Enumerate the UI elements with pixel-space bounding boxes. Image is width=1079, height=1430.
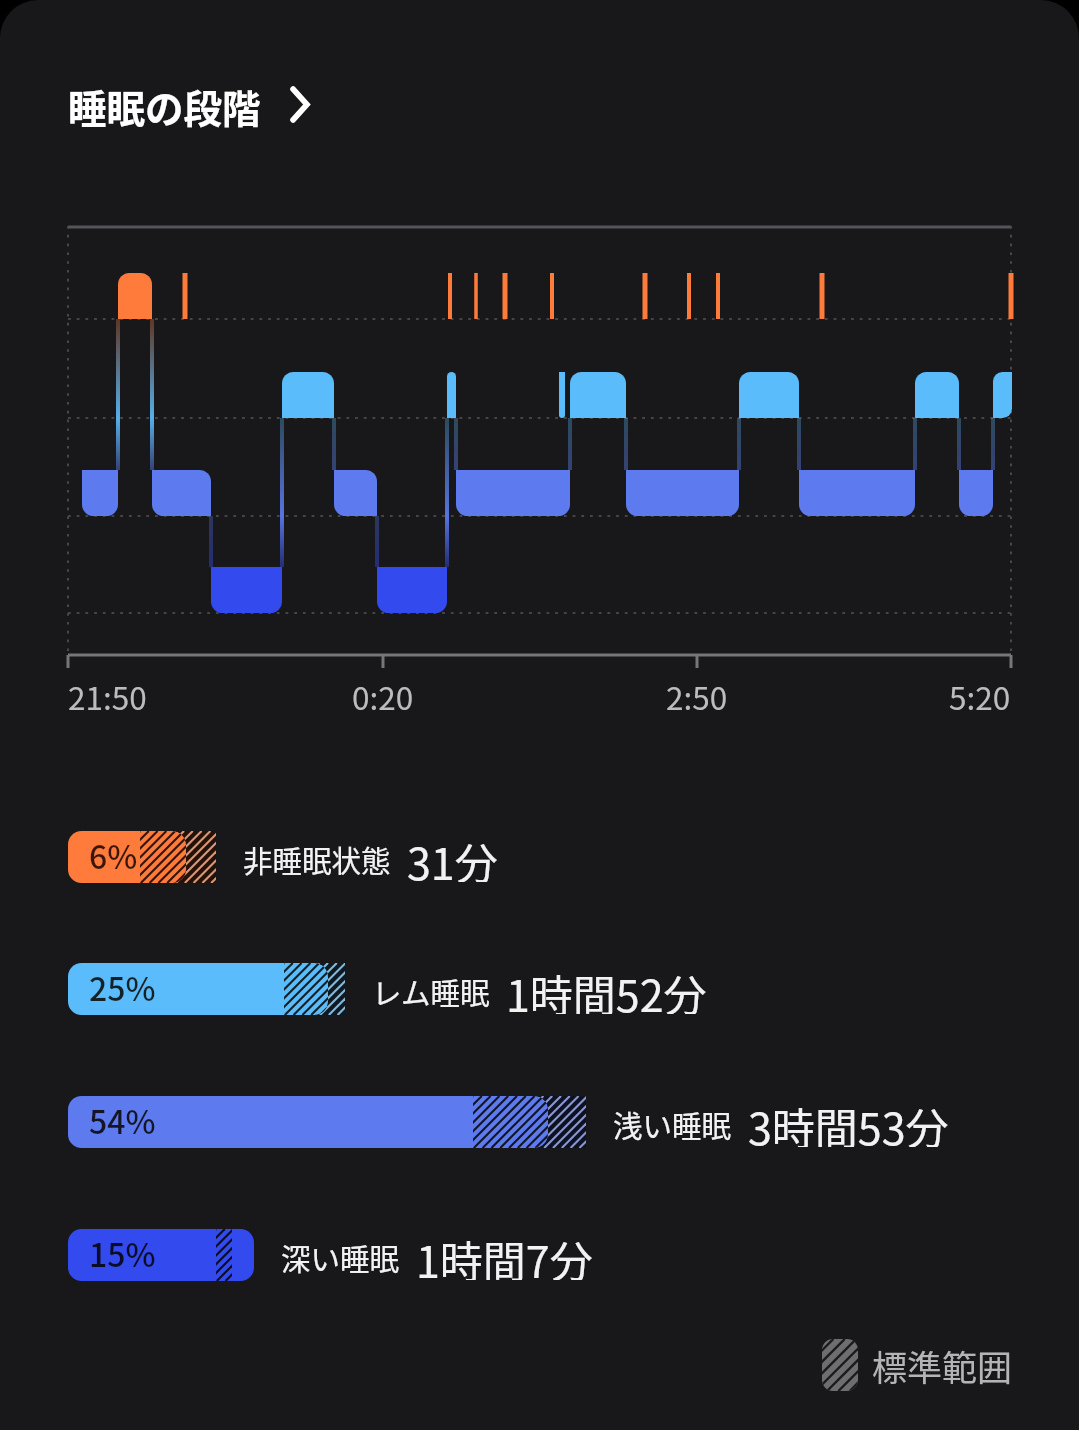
staticText: 21:50 <box>68 673 147 717</box>
staticText: レム睡眠 <box>372 970 490 1013</box>
staticText: 睡眠の段階 <box>68 78 261 134</box>
staticText: 1時間7分 <box>416 1228 593 1280</box>
staticText: 3時間53分 <box>748 1095 949 1147</box>
staticText: 2:50 <box>666 673 728 717</box>
staticText: 標準範囲 <box>872 1340 1013 1391</box>
staticText: 15% <box>89 1230 156 1276</box>
button[interactable]: 標準範囲 <box>822 1339 1013 1391</box>
staticText: 非睡眠状態 <box>243 838 391 881</box>
staticText: 54% <box>89 1097 156 1143</box>
staticText: 25% <box>89 964 156 1010</box>
staticText: 6% <box>89 832 138 878</box>
staticText: 5:20 <box>949 673 1011 717</box>
staticText: 0:20 <box>352 673 414 717</box>
staticText: 31分 <box>407 830 498 882</box>
staticText: 1時間52分 <box>506 962 707 1014</box>
other: 詳細を見る <box>290 86 314 126</box>
button[interactable]: 睡眠の段階 <box>68 76 314 136</box>
staticText: 深い睡眠 <box>281 1236 400 1279</box>
staticText: 浅い睡眠 <box>613 1103 732 1146</box>
